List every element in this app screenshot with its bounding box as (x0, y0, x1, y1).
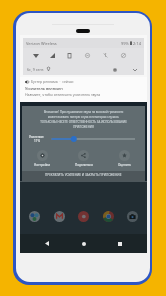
staticText: Verizon Wireless (26, 41, 57, 46)
staticText: Бустер реклама · сейчас (31, 79, 74, 84)
button[interactable]: Recents (110, 234, 130, 253)
button[interactable]: Quick setting 2 (61, 48, 78, 63)
button[interactable]: Quick setting 0 (27, 48, 44, 63)
staticText: 99% (121, 41, 129, 46)
button[interactable]: App 2 (78, 211, 89, 222)
staticText: Оценить (118, 163, 131, 167)
button[interactable]: ПРЕКРАТИТЬ УСИЛЕНИЕ И ЗАКРЫТЬ ПРИЛОЖЕНИЕ (22, 171, 145, 181)
button[interactable]: Quick setting 3 (78, 48, 96, 63)
staticText: Усиление: (29, 135, 45, 139)
button[interactable]: Оценить (104, 148, 145, 167)
button[interactable]: Settings (110, 65, 119, 74)
button[interactable]: Настройки (22, 148, 63, 167)
staticText: Внимание! Прослушивание звука на высокой… (40, 110, 127, 129)
staticText: 11% (34, 139, 41, 143)
button[interactable]: App 1 (54, 211, 65, 222)
button[interactable]: App 4 (127, 211, 138, 222)
button[interactable]: Quick setting 5 (114, 48, 132, 63)
staticText: 6с, 9 сент. (27, 67, 45, 72)
button[interactable]: Home (74, 234, 94, 253)
button[interactable]: Back (37, 234, 57, 253)
staticText: Настройки (34, 163, 51, 167)
staticText: 2:14 (133, 41, 141, 46)
staticText: Нажмите, чтобы отключить усилитель звука (25, 92, 101, 97)
button[interactable]: App 0 (29, 211, 40, 222)
button[interactable]: Quick setting 4 (96, 48, 114, 63)
button[interactable]: App 3 (103, 211, 114, 222)
staticText: Усилитель включен (25, 86, 63, 91)
staticText: Поделиться (75, 163, 93, 167)
button[interactable]: Expand (130, 65, 139, 74)
button[interactable]: Поделиться (63, 148, 104, 167)
staticText: ПРЕКРАТИТЬ УСИЛЕНИЕ И ЗАКРЫТЬ ПРИЛОЖЕНИЕ (45, 173, 122, 177)
button[interactable]: Quick setting 1 (44, 48, 61, 63)
